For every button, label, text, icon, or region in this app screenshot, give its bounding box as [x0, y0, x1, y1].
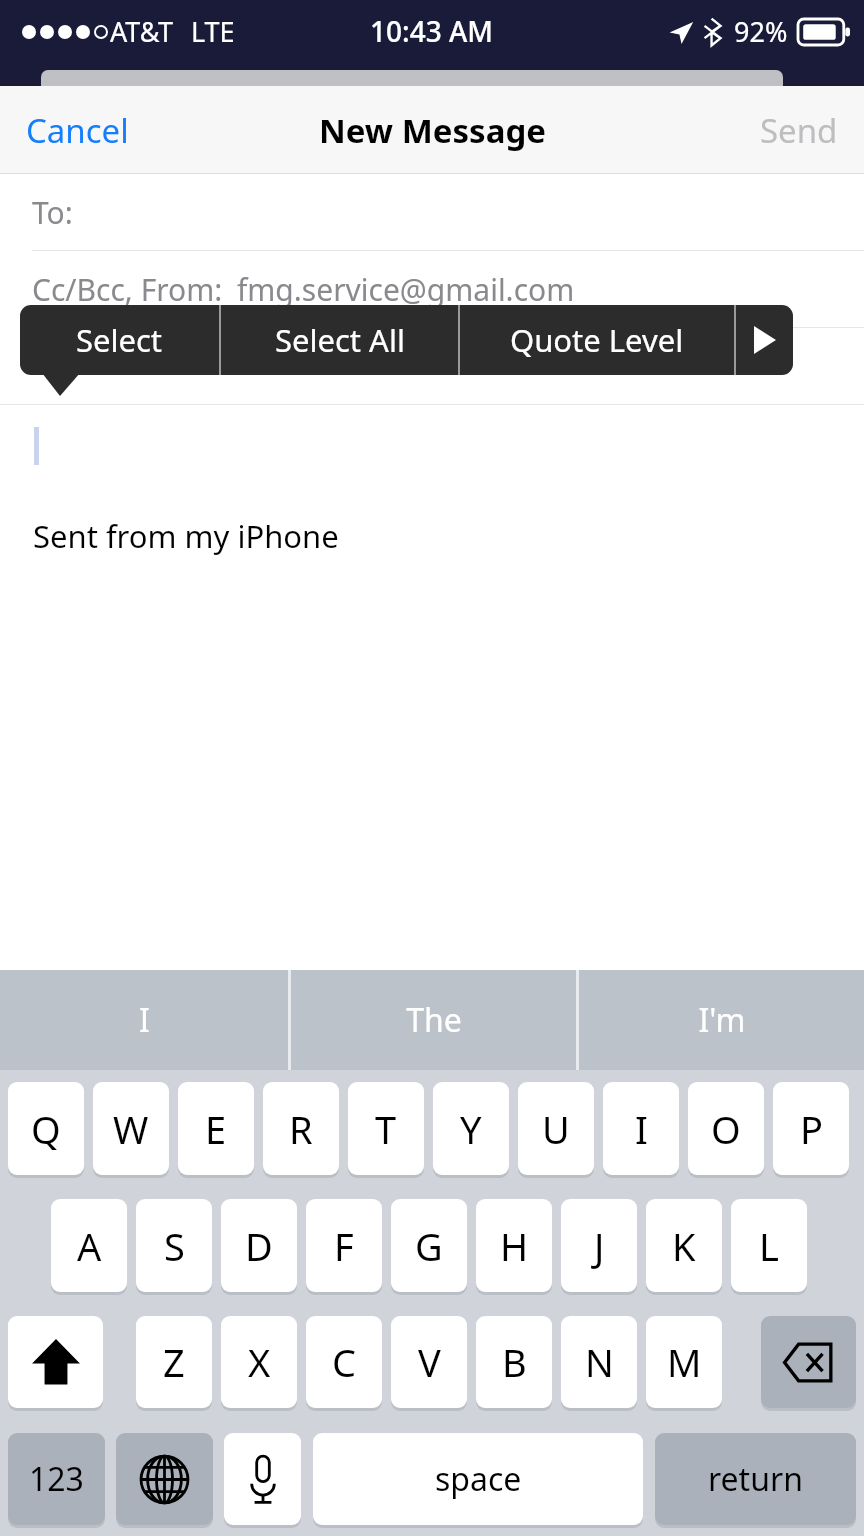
- staticText: Y: [460, 1103, 482, 1155]
- staticText: 123: [29, 1457, 84, 1501]
- staticText: V: [418, 1336, 441, 1388]
- staticText: 10:43 AM: [370, 12, 494, 50]
- staticText: 92%: [734, 13, 788, 50]
- staticText: O: [711, 1103, 741, 1155]
- staticText: AT&T: [110, 13, 173, 50]
- button[interactable]: H: [476, 1199, 552, 1292]
- button[interactable]: The: [291, 970, 576, 1070]
- button[interactable]: Select: [20, 305, 219, 375]
- staticText: F: [334, 1220, 354, 1272]
- button[interactable]: L: [731, 1199, 807, 1292]
- button[interactable]: A: [51, 1199, 127, 1292]
- button[interactable]: Shift: [8, 1316, 103, 1408]
- staticText: S: [164, 1220, 185, 1272]
- button[interactable]: P: [773, 1082, 849, 1175]
- button[interactable]: More menu items: [736, 305, 793, 375]
- staticText: Cc/Bcc, From:: [32, 269, 223, 310]
- staticText: Select All: [275, 319, 405, 361]
- button[interactable]: Send: [734, 86, 864, 174]
- button[interactable]: Switch keyboard: [116, 1433, 213, 1525]
- button[interactable]: I: [603, 1082, 679, 1175]
- button[interactable]: K: [646, 1199, 722, 1292]
- button[interactable]: T: [348, 1082, 424, 1175]
- staticText: return: [708, 1457, 803, 1501]
- button[interactable]: I'm: [579, 970, 864, 1070]
- staticText: P: [800, 1103, 823, 1155]
- staticText: fmg.service@gmail.com: [237, 269, 575, 310]
- button[interactable]: D: [221, 1199, 297, 1292]
- staticText: space: [435, 1457, 522, 1501]
- button[interactable]: Sent from my iPhone: [0, 405, 864, 665]
- staticText: A: [77, 1220, 102, 1272]
- staticText: Z: [163, 1336, 185, 1388]
- button[interactable]: S: [136, 1199, 212, 1292]
- button[interactable]: M: [646, 1316, 722, 1408]
- button[interactable]: C: [306, 1316, 382, 1408]
- button[interactable]: Cancel: [0, 86, 155, 174]
- button[interactable]: To:: [0, 174, 864, 250]
- staticText: LTE: [191, 13, 235, 50]
- staticText: W: [113, 1103, 149, 1155]
- staticText: Quote Level: [510, 319, 684, 361]
- staticText: D: [245, 1220, 273, 1272]
- button[interactable]: V: [391, 1316, 467, 1408]
- staticText: E: [205, 1103, 227, 1155]
- staticText: New Message: [319, 108, 546, 153]
- button[interactable]: Z: [136, 1316, 212, 1408]
- staticText: K: [672, 1220, 696, 1272]
- staticText: I'm: [698, 998, 746, 1042]
- button[interactable]: N: [561, 1316, 637, 1408]
- button[interactable]: [0, 328, 864, 404]
- button[interactable]: Backspace: [761, 1316, 856, 1408]
- button[interactable]: Quote Level: [460, 305, 734, 375]
- staticText: Q: [31, 1103, 61, 1155]
- staticText: H: [500, 1220, 529, 1272]
- staticText: R: [289, 1103, 313, 1155]
- button[interactable]: F: [306, 1199, 382, 1292]
- button[interactable]: J: [561, 1199, 637, 1292]
- button[interactable]: B: [476, 1316, 552, 1408]
- staticText: J: [594, 1220, 605, 1272]
- button[interactable]: X: [221, 1316, 297, 1408]
- button[interactable]: I: [0, 970, 288, 1070]
- staticText: B: [502, 1336, 527, 1388]
- button[interactable]: space: [313, 1433, 643, 1525]
- button[interactable]: G: [391, 1199, 467, 1292]
- button[interactable]: O: [688, 1082, 764, 1175]
- staticText: Cancel: [26, 108, 129, 153]
- staticText: I: [635, 1103, 648, 1155]
- staticText: T: [375, 1103, 397, 1155]
- staticText: N: [585, 1336, 614, 1388]
- staticText: M: [667, 1336, 702, 1388]
- button[interactable]: Select All: [221, 305, 458, 375]
- staticText: To:: [32, 192, 73, 233]
- button[interactable]: Q: [8, 1082, 84, 1175]
- staticText: G: [415, 1220, 443, 1272]
- staticText: X: [248, 1336, 271, 1388]
- button[interactable]: Dictate: [224, 1433, 301, 1525]
- button[interactable]: W: [93, 1082, 169, 1175]
- button[interactable]: 123: [8, 1433, 105, 1525]
- button[interactable]: Y: [433, 1082, 509, 1175]
- button[interactable]: R: [263, 1082, 339, 1175]
- staticText: C: [332, 1336, 357, 1388]
- staticText: U: [542, 1103, 570, 1155]
- button[interactable]: Cc/Bcc, From:: [0, 251, 864, 327]
- button[interactable]: E: [178, 1082, 254, 1175]
- staticText: L: [759, 1220, 779, 1272]
- button[interactable]: U: [518, 1082, 594, 1175]
- staticText: The: [406, 998, 462, 1042]
- staticText: Select: [76, 319, 163, 361]
- button[interactable]: return: [655, 1433, 856, 1525]
- staticText: I: [139, 998, 150, 1042]
- staticText: Send: [760, 108, 838, 153]
- staticText: Sent from my iPhone: [33, 515, 339, 557]
